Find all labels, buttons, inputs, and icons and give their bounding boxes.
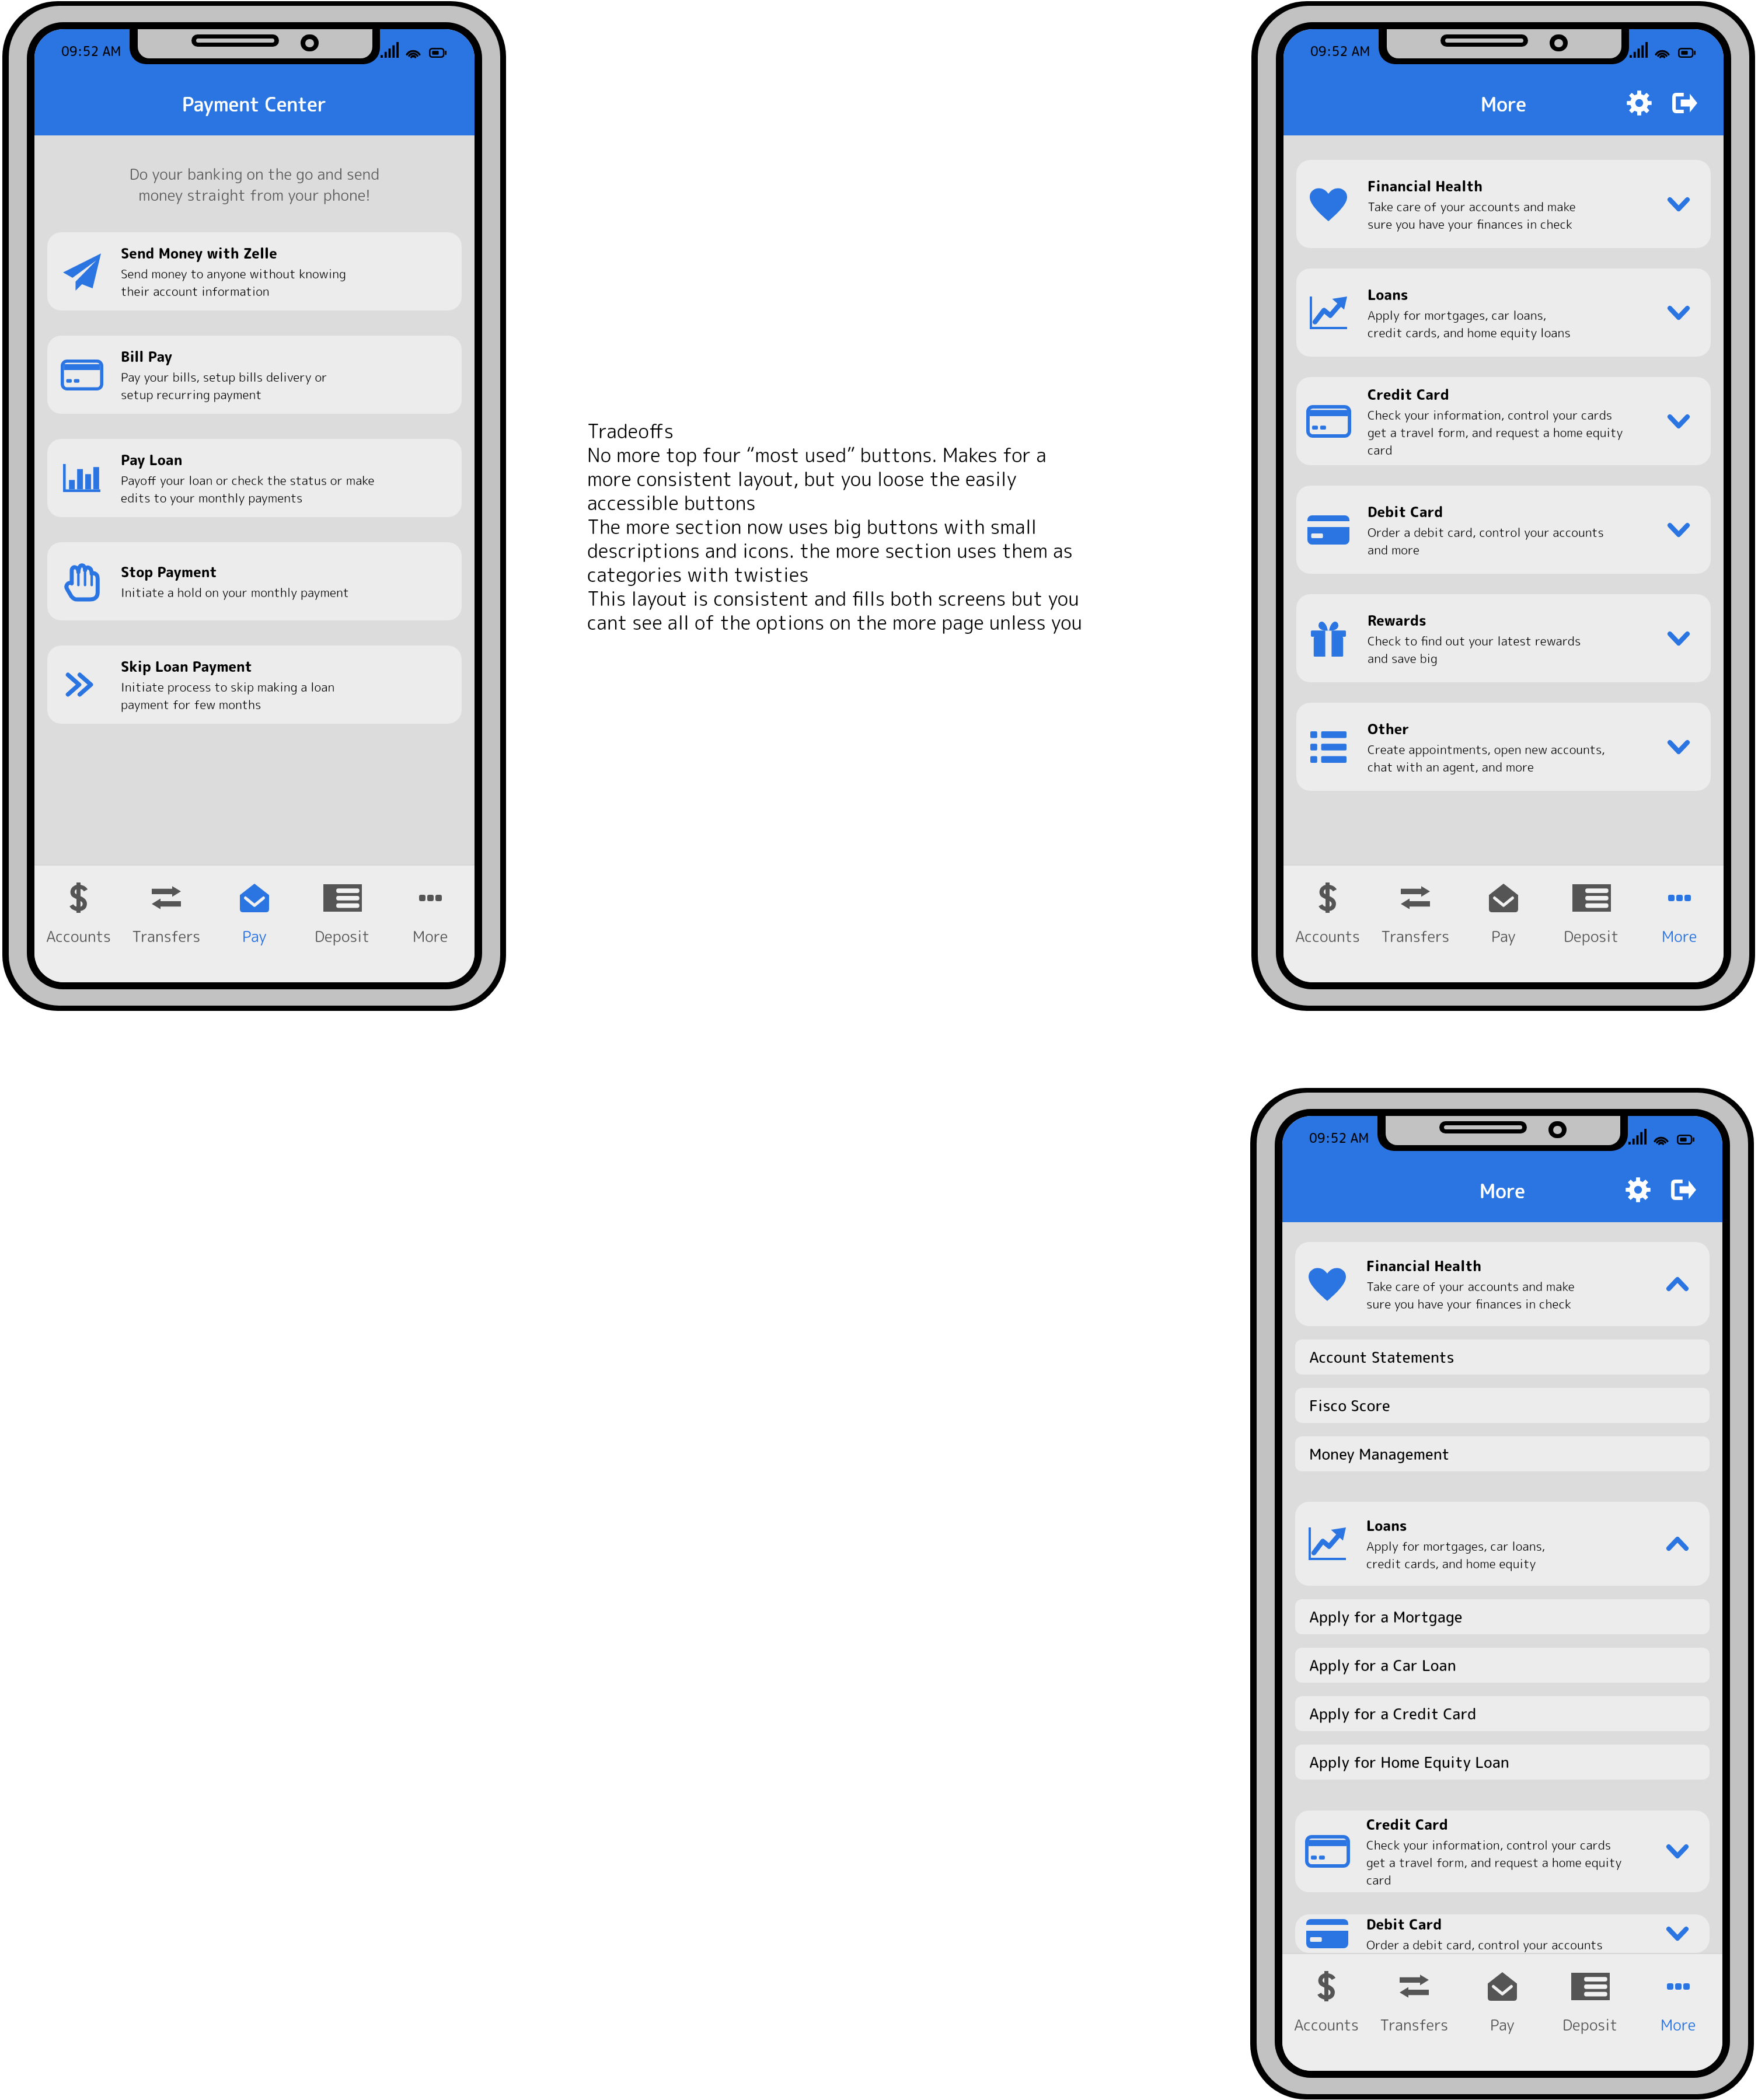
button[interactable]: Apply for a Car Loan (1295, 1648, 1710, 1683)
staticText: Accounts (1295, 926, 1360, 947)
staticText: Create appointments, open new accounts, … (1368, 741, 1605, 775)
button[interactable]: Accounts (34, 866, 122, 952)
button[interactable]: Debit Card (1296, 486, 1711, 574)
staticText: Initiate process to skip making a loan p… (121, 678, 335, 713)
staticText: Deposit (1564, 926, 1619, 947)
button[interactable]: Skip Loan Payment (47, 646, 462, 724)
staticText: 09:52 AM (1309, 1129, 1369, 1147)
staticText: Other (1368, 719, 1410, 738)
button[interactable]: Settings (1621, 1173, 1654, 1206)
staticText: 09:52 AM (61, 42, 121, 60)
staticText: More (1662, 926, 1697, 947)
button[interactable]: More (386, 866, 475, 952)
staticText: Pay (242, 926, 267, 947)
staticText: Pay your bills, setup bills delivery or … (121, 368, 327, 403)
staticText: Payoff your loan or check the status or … (121, 472, 375, 506)
staticText: Check your information, control your car… (1366, 1836, 1645, 1888)
button[interactable]: Transfers (1370, 1954, 1458, 2040)
staticText: Debit Card (1368, 502, 1443, 521)
staticText: Take care of your accounts and make sure… (1366, 1278, 1575, 1312)
staticText: Check your information, control your car… (1368, 406, 1646, 458)
staticText: Tradeoffs No more top four “most used” b… (587, 418, 1082, 636)
staticText: Account Statements (1309, 1346, 1454, 1368)
button[interactable]: Send Money with Zelle (47, 232, 462, 311)
staticText: Rewards (1368, 611, 1426, 630)
staticText: Bill Pay (121, 347, 173, 366)
button[interactable]: More (1635, 866, 1724, 952)
button[interactable]: Money Management (1295, 1436, 1710, 1471)
staticText: Send money to anyone without knowing the… (121, 265, 346, 299)
button[interactable]: Loans (1296, 268, 1711, 357)
staticText: Stop Payment (121, 562, 217, 581)
button[interactable]: Log out (1668, 86, 1701, 119)
staticText: More (413, 926, 448, 947)
staticText: Take care of your accounts and make sure… (1368, 198, 1576, 232)
button[interactable]: Pay (1459, 866, 1547, 952)
button[interactable]: Pay Loan (47, 439, 462, 517)
staticText: Apply for Home Equity Loan (1309, 1752, 1509, 1773)
staticText: Check to find out your latest rewards an… (1368, 632, 1581, 667)
button[interactable]: Account Statements (1295, 1339, 1710, 1375)
staticText: More (1480, 1178, 1525, 1205)
button[interactable]: Financial Health (1296, 160, 1711, 248)
button[interactable]: Log out (1667, 1173, 1700, 1206)
button[interactable]: Apply for a Mortgage (1295, 1599, 1710, 1634)
button[interactable]: Fisco Score (1295, 1388, 1710, 1423)
button[interactable]: Loans (1295, 1502, 1710, 1586)
staticText: More (1661, 2014, 1696, 2035)
button[interactable]: Deposit (1546, 1954, 1634, 2040)
button[interactable]: Apply for Home Equity Loan (1295, 1745, 1710, 1780)
staticText: Transfers (1381, 926, 1450, 947)
button[interactable]: Rewards (1296, 594, 1711, 682)
button[interactable]: Accounts (1282, 1954, 1370, 2040)
staticText: Money Management (1309, 1443, 1450, 1464)
staticText: 09:52 AM (1310, 42, 1370, 60)
staticText: Loans (1366, 1516, 1407, 1535)
staticText: Pay Loan (121, 450, 183, 469)
button[interactable]: Financial Health (1295, 1242, 1710, 1326)
button[interactable]: More (1634, 1954, 1722, 2040)
staticText: Do your banking on the go and send money… (34, 163, 475, 205)
button[interactable]: Settings (1623, 86, 1655, 119)
staticText: Send Money with Zelle (121, 243, 277, 263)
staticText: Apply for mortgages, car loans, credit c… (1368, 306, 1571, 341)
staticText: Pay (1491, 926, 1516, 947)
button[interactable]: Debit Card (1295, 1914, 1710, 1953)
staticText: Credit Card (1368, 385, 1449, 404)
staticText: Fisco Score (1309, 1395, 1390, 1416)
staticText: Financial Health (1368, 176, 1483, 196)
staticText: Order a debit card, control your account… (1366, 1936, 1603, 1953)
staticText: Initiate a hold on your monthly payment (121, 584, 350, 601)
staticText: Loans (1368, 285, 1408, 304)
staticText: Financial Health (1366, 1256, 1482, 1275)
staticText: More (1481, 91, 1526, 118)
staticText: Skip Loan Payment (121, 657, 253, 676)
button[interactable]: Deposit (1547, 866, 1635, 952)
button[interactable]: Accounts (1283, 866, 1371, 952)
button[interactable]: Transfers (122, 866, 210, 952)
staticText: Deposit (315, 926, 370, 947)
staticText: Apply for a Mortgage (1309, 1606, 1463, 1627)
staticText: Accounts (1294, 2014, 1359, 2035)
staticText: Apply for a Car Loan (1309, 1655, 1456, 1676)
staticText: Apply for mortgages, car loans, credit c… (1366, 1537, 1546, 1572)
staticText: Transfers (1380, 2014, 1449, 2035)
button[interactable]: Bill Pay (47, 336, 462, 414)
staticText: Apply for a Credit Card (1309, 1703, 1477, 1724)
staticText: Payment Center (182, 91, 327, 118)
button[interactable]: Pay (210, 866, 298, 952)
staticText: Pay (1490, 2014, 1515, 2035)
button[interactable]: Transfers (1371, 866, 1459, 952)
button[interactable]: Stop Payment (47, 542, 462, 620)
staticText: Order a debit card, control your account… (1368, 524, 1604, 558)
button[interactable]: Deposit (298, 866, 386, 952)
button[interactable]: Credit Card (1295, 1811, 1710, 1892)
button[interactable]: Apply for a Credit Card (1295, 1696, 1710, 1731)
staticText: Deposit (1562, 2014, 1618, 2035)
button[interactable]: Other (1296, 703, 1711, 791)
staticText: Accounts (46, 926, 111, 947)
button[interactable]: Credit Card (1296, 377, 1711, 465)
staticText: Debit Card (1366, 1914, 1442, 1934)
button[interactable]: Pay (1458, 1954, 1546, 2040)
staticText: Transfers (132, 926, 201, 947)
